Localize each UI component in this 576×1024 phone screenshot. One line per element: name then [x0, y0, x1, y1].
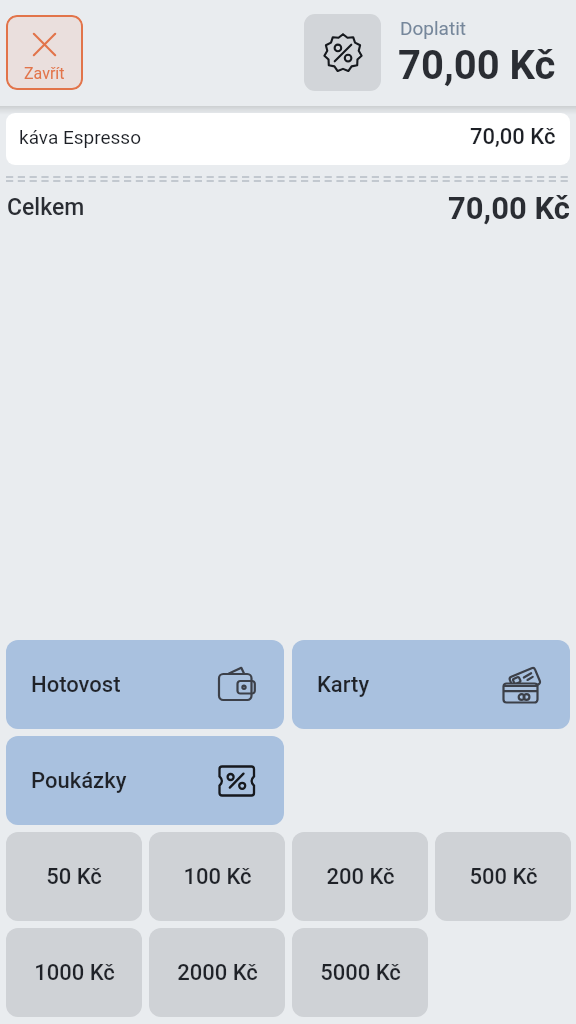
- staticText: 70,00 Kč: [448, 190, 570, 226]
- staticText: 70,00 Kč: [398, 42, 556, 89]
- staticText: 500 Kč: [469, 864, 538, 890]
- staticText: 100 Kč: [183, 864, 252, 890]
- button[interactable]: 500 Kč: [435, 832, 571, 921]
- staticText: 200 Kč: [326, 864, 395, 890]
- staticText: Zavřít: [24, 64, 65, 83]
- button[interactable]: 5000 Kč: [292, 928, 428, 1017]
- button[interactable]: káva Espresso: [6, 113, 570, 165]
- staticText: 5000 Kč: [320, 960, 401, 986]
- staticText: 50 Kč: [46, 864, 102, 890]
- staticText: 2000 Kč: [177, 960, 258, 986]
- button[interactable]: 50 Kč: [6, 832, 142, 921]
- staticText: 1000 Kč: [34, 960, 115, 986]
- button[interactable]: 100 Kč: [149, 832, 285, 921]
- staticText: Hotovost: [31, 672, 121, 698]
- staticText: Celkem: [7, 194, 85, 221]
- staticText: Karty: [317, 672, 370, 698]
- staticText: Poukázky: [31, 768, 127, 794]
- button[interactable]: Zavřít: [6, 15, 83, 90]
- button[interactable]: Karty: [292, 640, 570, 729]
- button[interactable]: Hotovost: [6, 640, 284, 729]
- button[interactable]: 1000 Kč: [6, 928, 142, 1017]
- button[interactable]: 200 Kč: [292, 832, 428, 921]
- button[interactable]: Poukázky: [6, 736, 284, 825]
- staticText: Doplatit: [400, 17, 466, 39]
- button[interactable]: Sleva: [304, 14, 381, 91]
- staticText: 70,00 Kč: [470, 124, 556, 150]
- button[interactable]: 2000 Kč: [149, 928, 285, 1017]
- staticText: káva Espresso: [19, 126, 141, 148]
